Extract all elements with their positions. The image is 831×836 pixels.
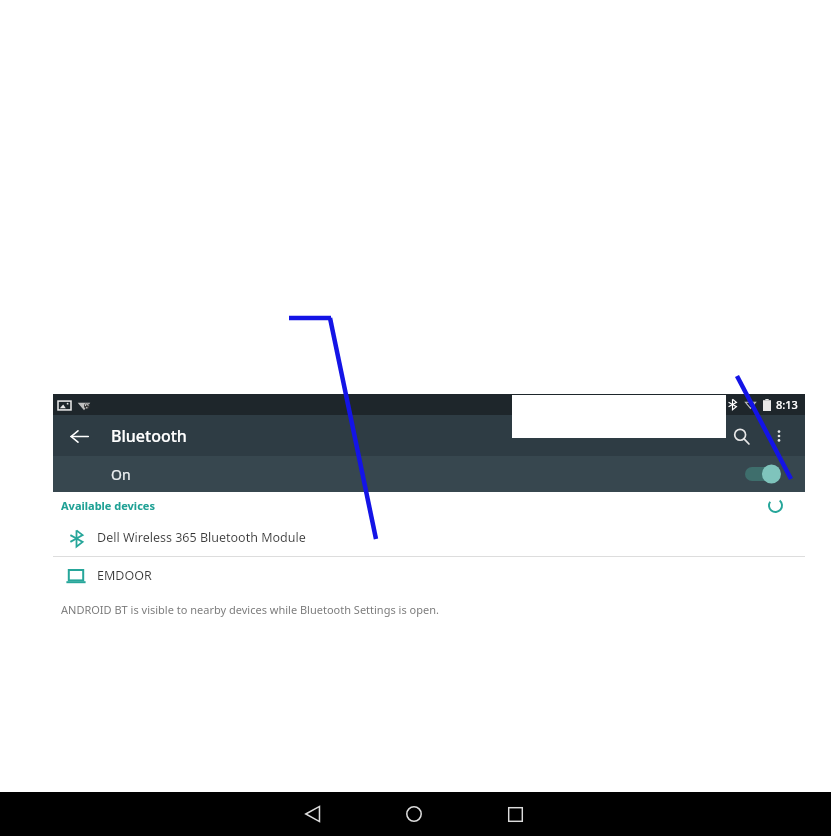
button[interactable]: Home	[391, 792, 437, 836]
staticText: Dell Wireless 365 Bluetooth Module	[97, 529, 306, 546]
button[interactable]: Dell Wireless 365 Bluetooth Module	[53, 519, 805, 556]
staticText: 8:13	[776, 397, 798, 412]
staticText: EMDOOR	[97, 567, 152, 584]
button[interactable]: Back	[290, 792, 336, 836]
staticText: On	[111, 465, 131, 484]
button[interactable]: More options	[761, 418, 797, 454]
button[interactable]: EMDOOR	[53, 557, 805, 594]
button[interactable]: Recent apps	[492, 792, 538, 836]
staticText: Bluetooth	[111, 425, 187, 447]
button[interactable]: Back	[61, 418, 97, 454]
button[interactable]: Search	[723, 418, 759, 454]
button[interactable]: Bluetooth on	[745, 460, 789, 488]
staticText: ANDROID BT is visible to nearby devices …	[61, 602, 439, 617]
staticText: Available devices	[61, 498, 155, 513]
button[interactable]: Scanning	[761, 492, 789, 519]
button[interactable]: On	[53, 456, 805, 492]
